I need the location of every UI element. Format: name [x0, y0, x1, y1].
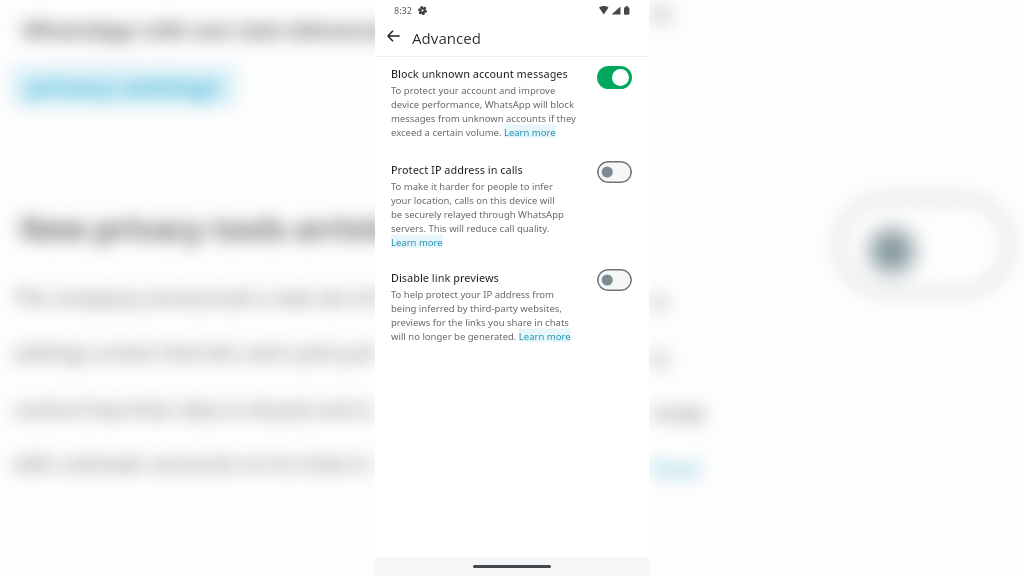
- button[interactable]: Block unknown account messages: [375, 66, 649, 138]
- staticText: Disable link previews: [391, 270, 499, 285]
- button[interactable]: Back: [380, 25, 406, 51]
- staticText: The company announced a new set of tools: [14, 284, 421, 311]
- staticText: WhatsApp rolls out new Advanced: [22, 14, 396, 44]
- staticText: privacy settings: [28, 70, 219, 103]
- staticText: To help protect your IP address from bei…: [391, 288, 571, 342]
- staticText: 8:32: [394, 4, 412, 16]
- staticText: in: [652, 345, 670, 372]
- staticText: To make it harder for people to infer yo…: [391, 180, 564, 248]
- staticText: ready: [652, 399, 705, 426]
- staticText: control how their data is shared and is: [14, 396, 373, 423]
- staticText: New privacy tools arriving: [20, 208, 413, 249]
- staticText: Advanced: [412, 28, 482, 48]
- button[interactable]: Protect IP address in calls, off: [597, 161, 632, 183]
- staticText: to: [652, 0, 672, 27]
- button[interactable]: Protect IP address in calls: [375, 162, 649, 248]
- button[interactable]: Disable link previews, off: [597, 269, 632, 291]
- staticText: Read: [652, 455, 700, 482]
- button[interactable]: Disable link previews: [375, 270, 649, 342]
- staticText: is: [652, 288, 667, 315]
- staticText: settings screen that lets users pick jus…: [14, 339, 377, 366]
- staticText: Protect IP address in calls: [391, 162, 523, 177]
- button[interactable]: Home gesture bar: [375, 557, 649, 576]
- staticText: with unknown accounts on its chats in: [14, 450, 372, 477]
- button[interactable]: Block unknown account messages, on: [597, 66, 632, 89]
- staticText: Block unknown account messages: [391, 66, 568, 81]
- staticText: To protect your account and improve devi…: [391, 84, 576, 138]
